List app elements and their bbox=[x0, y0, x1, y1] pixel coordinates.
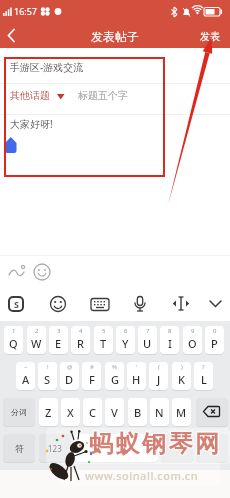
button[interactable] bbox=[71, 326, 90, 354]
staticText: R bbox=[77, 336, 84, 351]
button[interactable] bbox=[128, 398, 147, 426]
staticText: C bbox=[89, 405, 96, 420]
staticText: 蚂蚁钢琴网 bbox=[89, 429, 222, 459]
staticText: W bbox=[31, 336, 42, 351]
button[interactable] bbox=[60, 362, 79, 390]
staticText: 标题五个字 bbox=[78, 89, 128, 102]
staticText: E bbox=[55, 336, 62, 351]
staticText: P bbox=[211, 336, 218, 351]
staticText: Y bbox=[122, 336, 129, 351]
staticText: N bbox=[155, 405, 164, 420]
staticText: # bbox=[90, 363, 94, 371]
staticText: X bbox=[67, 405, 74, 420]
staticText: 9 bbox=[191, 327, 195, 335]
staticText: 发表帖子 bbox=[91, 29, 139, 44]
button[interactable] bbox=[196, 398, 228, 426]
button[interactable] bbox=[39, 398, 58, 426]
button[interactable] bbox=[196, 434, 228, 462]
button[interactable] bbox=[172, 398, 191, 426]
staticText: 3 bbox=[57, 327, 61, 335]
staticText: K bbox=[178, 372, 185, 387]
staticText: 蚂蚁钢琴网 bbox=[90, 430, 223, 460]
button[interactable]: 123 bbox=[39, 434, 71, 462]
staticText: 123 bbox=[48, 443, 62, 454]
staticText: www.soinall.com.cn bbox=[85, 468, 199, 483]
button[interactable] bbox=[82, 362, 101, 390]
staticText: V bbox=[111, 405, 118, 420]
staticText: O bbox=[188, 336, 197, 351]
staticText: ' bbox=[136, 363, 138, 371]
staticText: 其他话题 bbox=[10, 89, 50, 102]
staticText: 符 bbox=[15, 443, 24, 454]
button[interactable] bbox=[16, 362, 35, 390]
staticText: ( bbox=[158, 363, 160, 371]
button[interactable] bbox=[138, 326, 157, 354]
staticText: T bbox=[100, 336, 107, 351]
staticText: 蚂蚁钢琴网 bbox=[88, 428, 221, 458]
button[interactable] bbox=[194, 362, 213, 390]
button[interactable]: 发表 bbox=[194, 24, 226, 48]
staticText: Z bbox=[45, 405, 52, 420]
staticText: B bbox=[134, 405, 142, 420]
staticText: G bbox=[111, 372, 119, 387]
staticText: Q bbox=[9, 336, 18, 351]
button[interactable] bbox=[160, 326, 179, 354]
button[interactable] bbox=[161, 434, 193, 462]
staticText: 6 bbox=[124, 327, 128, 335]
staticText: J bbox=[157, 372, 161, 387]
staticText: M bbox=[176, 405, 187, 420]
staticText: 发表 bbox=[200, 30, 220, 43]
staticText: A bbox=[22, 372, 30, 387]
button[interactable] bbox=[205, 326, 224, 354]
staticText: 16:57 bbox=[14, 5, 38, 17]
button[interactable] bbox=[183, 326, 202, 354]
staticText: S bbox=[14, 298, 19, 310]
button[interactable] bbox=[49, 326, 68, 354]
button[interactable] bbox=[27, 326, 46, 354]
button[interactable] bbox=[116, 326, 135, 354]
button[interactable] bbox=[127, 362, 146, 390]
button[interactable] bbox=[105, 398, 124, 426]
button[interactable]: 发表帖子 bbox=[0, 24, 230, 48]
staticText: H bbox=[132, 372, 141, 387]
button[interactable]: S bbox=[8, 296, 24, 312]
staticText: 7 bbox=[146, 327, 150, 335]
staticText: @ bbox=[67, 363, 73, 371]
staticText: 大家好呀! bbox=[10, 117, 53, 131]
button[interactable] bbox=[105, 362, 124, 390]
button[interactable] bbox=[149, 362, 168, 390]
staticText: ! bbox=[47, 363, 49, 371]
staticText: 蚂蚁钢琴网 bbox=[88, 430, 221, 460]
staticText: U bbox=[143, 336, 152, 351]
staticText: 1 bbox=[12, 327, 16, 335]
button[interactable]: 分词 bbox=[3, 398, 35, 426]
staticText: I bbox=[168, 336, 172, 351]
staticText: 分词 bbox=[11, 407, 27, 417]
staticText: ) bbox=[181, 363, 183, 371]
staticText: S bbox=[44, 372, 51, 387]
staticText: 手游区-游戏交流 bbox=[10, 60, 84, 74]
staticText: 蚂蚁钢琴网 bbox=[90, 428, 223, 458]
staticText: 2 bbox=[35, 327, 39, 335]
button[interactable] bbox=[4, 326, 23, 354]
button[interactable] bbox=[74, 434, 158, 462]
staticText: F bbox=[89, 372, 95, 387]
staticText: 0 bbox=[213, 327, 217, 335]
button[interactable] bbox=[83, 398, 102, 426]
button[interactable] bbox=[94, 326, 113, 354]
staticText: ? bbox=[202, 363, 205, 371]
button[interactable] bbox=[38, 362, 57, 390]
staticText: 8 bbox=[168, 327, 172, 335]
staticText: ~ bbox=[24, 363, 28, 371]
staticText: % bbox=[112, 363, 117, 371]
button[interactable] bbox=[150, 398, 169, 426]
button[interactable] bbox=[172, 362, 191, 390]
staticText: L bbox=[201, 372, 207, 387]
staticText: 4 bbox=[79, 327, 83, 335]
button[interactable] bbox=[61, 398, 80, 426]
button[interactable]: 符 bbox=[3, 434, 35, 462]
staticText: 5 bbox=[102, 327, 106, 335]
staticText: D bbox=[65, 372, 74, 387]
